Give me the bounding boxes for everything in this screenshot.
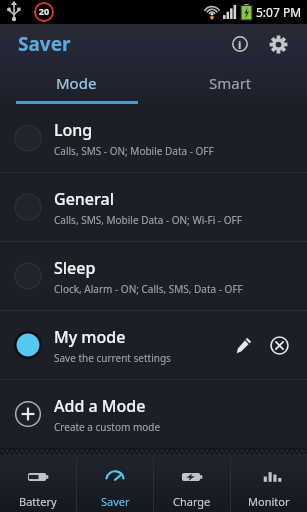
staticText: i xyxy=(238,37,242,52)
button[interactable]: General xyxy=(0,173,307,241)
button[interactable]: Battery xyxy=(0,455,76,512)
button[interactable]: Mode xyxy=(0,64,153,101)
staticText: 20 xyxy=(36,5,52,17)
staticText: Create a custom mode xyxy=(54,420,161,434)
button[interactable]: Delete mode xyxy=(261,327,297,363)
staticText: Long xyxy=(54,119,93,141)
staticText: Sleep xyxy=(54,257,96,279)
button[interactable]: Settings xyxy=(261,27,295,61)
button[interactable]: Sleep xyxy=(0,242,307,310)
staticText: Save the current settings xyxy=(54,351,171,365)
staticText: Saver xyxy=(101,494,130,509)
button[interactable]: My mode xyxy=(0,311,307,379)
staticText: Calls, SMS - ON; Mobile Data - OFF xyxy=(54,144,214,158)
staticText: Add a Mode xyxy=(54,395,146,417)
staticText: Smart xyxy=(209,73,252,93)
staticText: General xyxy=(54,188,114,210)
button[interactable]: Edit mode xyxy=(225,327,261,363)
staticText: 5:07 PM xyxy=(256,4,302,20)
staticText: Calls, SMS, Mobile Data - ON; Wi-Fi - OF… xyxy=(54,213,242,227)
button[interactable]: Charge xyxy=(154,455,230,512)
staticText: Monitor xyxy=(248,494,290,509)
button[interactable]: Long xyxy=(0,104,307,172)
staticText: Mode xyxy=(56,73,97,93)
staticText: My mode xyxy=(54,326,126,348)
button[interactable]: Info xyxy=(223,27,257,61)
button[interactable]: Monitor xyxy=(231,455,307,512)
staticText: Battery xyxy=(19,494,57,509)
button[interactable]: Add a Mode xyxy=(0,380,307,448)
staticText: Clock, Alarm - ON; Calls, SMS, Data - OF… xyxy=(54,282,243,296)
staticText: Saver xyxy=(18,31,71,57)
button[interactable]: Smart xyxy=(153,64,307,101)
button[interactable]: Saver xyxy=(77,455,153,512)
staticText: Charge xyxy=(173,494,211,509)
